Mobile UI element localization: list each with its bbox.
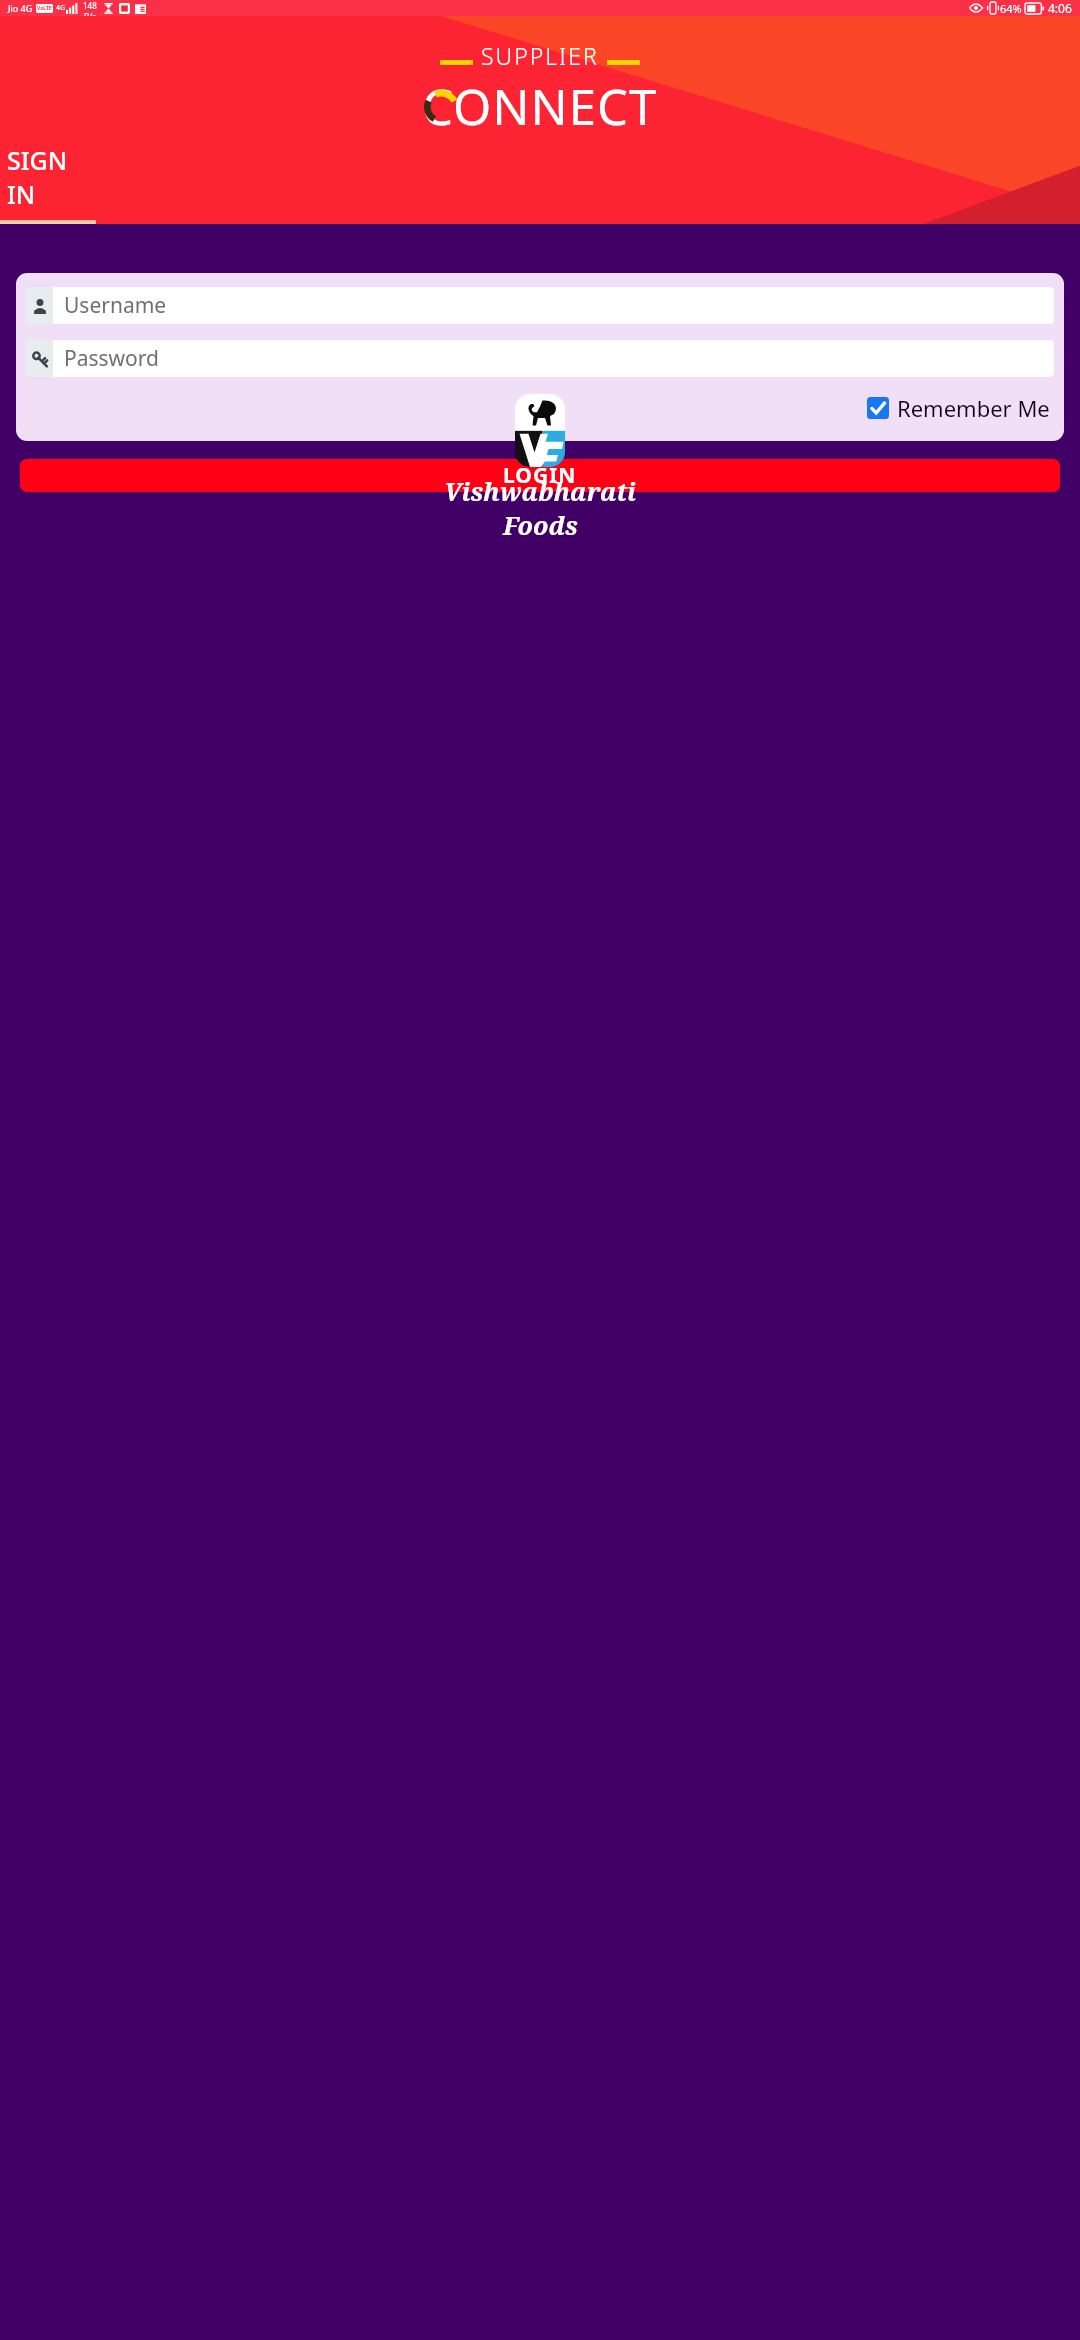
staticText: Username <box>64 291 167 320</box>
staticText: Jio 4G <box>8 2 33 14</box>
button[interactable]: Password <box>26 340 1054 377</box>
button[interactable]: Forget Password ? <box>433 341 647 382</box>
button[interactable]: SIGN IN <box>0 143 96 224</box>
staticText: B/s <box>84 11 97 16</box>
staticText: VoLTE <box>37 5 52 12</box>
staticText: Vishwabharati <box>444 474 636 508</box>
staticText: SIGN IN <box>7 143 96 211</box>
staticText: LOGIN <box>503 461 577 490</box>
staticText: 64% <box>1000 1 1022 16</box>
staticText: Password <box>64 344 159 373</box>
button[interactable]: Username <box>26 287 1054 324</box>
button[interactable]: LOGIN <box>20 459 1060 492</box>
staticText: 148 <box>83 0 97 11</box>
staticText: Remember Me <box>897 393 1050 423</box>
staticText: 4:06 <box>1048 0 1072 16</box>
staticText: SUPPLIER <box>481 40 599 71</box>
staticText: 4G <box>56 3 66 13</box>
staticText: CONNECT <box>422 73 658 140</box>
button[interactable]: Remember Me <box>863 389 1054 427</box>
staticText: Foods <box>503 508 578 542</box>
